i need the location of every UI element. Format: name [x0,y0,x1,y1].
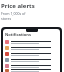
staticText: stores [1,16,12,21]
staticText: From 1,000s of [1,11,26,16]
staticText: Notifications [5,32,31,37]
staticText: Price alerts [1,2,35,10]
